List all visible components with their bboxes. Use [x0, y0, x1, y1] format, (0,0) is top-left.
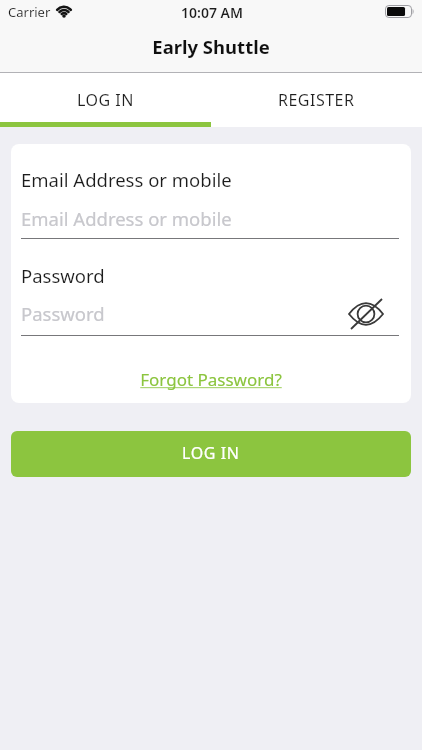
- staticText: Password: [21, 301, 105, 326]
- staticText: Password: [21, 263, 105, 288]
- staticText: Early Shuttle: [0, 34, 422, 59]
- button[interactable]: LOG IN: [11, 431, 411, 477]
- button[interactable]: LOG IN: [0, 73, 211, 127]
- staticText: Email Address or mobile: [21, 167, 232, 192]
- staticText: LOG IN: [77, 89, 134, 111]
- button[interactable]: REGISTER: [211, 73, 422, 127]
- button[interactable]: [347, 296, 385, 330]
- staticText: Carrier: [8, 3, 51, 21]
- staticText: 10:07 AM: [1, 3, 422, 22]
- button[interactable]: Forgot Password?: [11, 368, 411, 391]
- staticText: Email Address or mobile: [21, 206, 232, 231]
- staticText: REGISTER: [278, 89, 355, 111]
- staticText: LOG IN: [182, 442, 240, 464]
